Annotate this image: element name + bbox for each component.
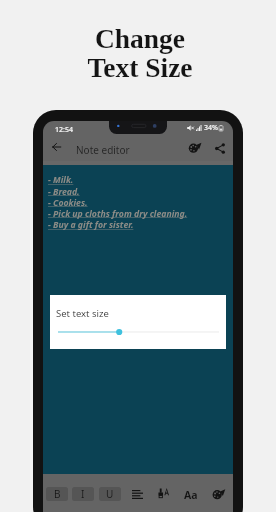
button[interactable]: U xyxy=(99,487,121,501)
button[interactable]: I xyxy=(72,487,94,501)
button[interactable]: B xyxy=(46,487,68,501)
button[interactable]: Set text size xyxy=(50,295,226,349)
staticText: Note editor xyxy=(76,143,130,157)
button[interactable]: Text colour xyxy=(209,487,228,502)
staticText: Aa xyxy=(184,488,198,501)
staticText: 34% xyxy=(204,123,218,133)
staticText: U xyxy=(106,487,114,501)
staticText: B xyxy=(54,487,61,501)
button[interactable]: Aa xyxy=(182,488,200,501)
staticText: - Milk. - Bread. - Cookies. - Pick up cl… xyxy=(48,174,188,231)
button[interactable]: Highlight colour xyxy=(155,486,172,500)
staticText: Set text size xyxy=(56,307,109,320)
button[interactable]: Text alignment xyxy=(129,488,146,501)
staticText: I xyxy=(81,487,85,501)
button[interactable]: Share xyxy=(209,137,231,159)
button[interactable]: Back xyxy=(46,136,67,157)
staticText: 12:54 xyxy=(55,125,73,135)
button[interactable]: Change colour theme xyxy=(183,137,205,159)
staticText: Change Text Size xyxy=(87,23,193,83)
